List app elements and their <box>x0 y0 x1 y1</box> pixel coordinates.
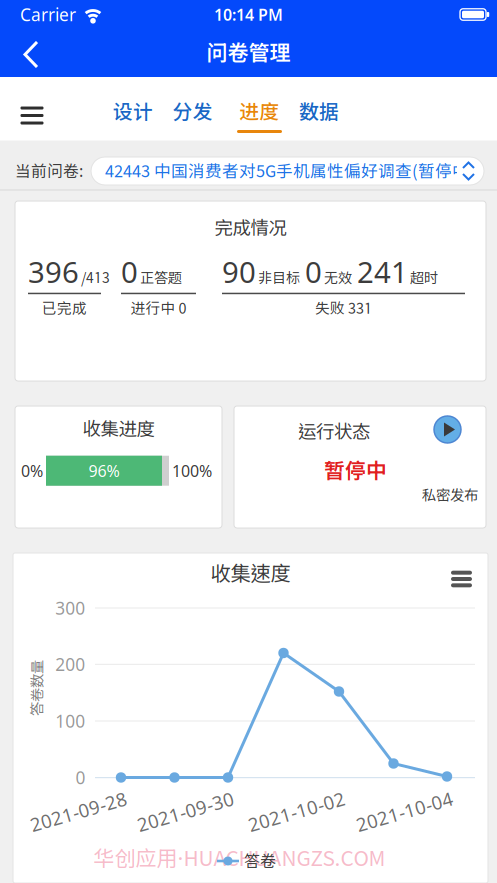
staticText: 42443 中国消费者对5G手机属性偏好调查(暂停中 <box>105 161 469 181</box>
staticText: 241 <box>357 252 408 291</box>
staticText: 进行中 0 <box>130 300 186 317</box>
staticText: 2021-09-30 <box>135 799 235 824</box>
staticText: 90 <box>222 252 256 291</box>
staticText: 2021-10-02 <box>246 799 346 824</box>
staticText: Carrier <box>20 3 76 26</box>
button[interactable]: 设计 <box>103 79 163 144</box>
button[interactable]: 42443 中国消费者对5G手机属性偏好调查(暂停中 <box>91 157 484 185</box>
staticText: 396 <box>28 252 79 291</box>
staticText: 运行状态 <box>298 421 370 442</box>
button[interactable]: 进度 <box>222 79 297 144</box>
staticText: 超时 <box>410 269 438 286</box>
staticText: 300 <box>55 596 85 619</box>
staticText: 完成情况 <box>214 217 286 239</box>
staticText: 96% <box>88 460 119 481</box>
staticText: 问卷管理 <box>206 40 290 65</box>
staticText: 2021-09-28 <box>28 799 128 824</box>
staticText: 正答题 <box>140 269 182 286</box>
staticText: 失败 331 <box>315 300 372 317</box>
staticText: 答卷数量 <box>9 680 65 696</box>
staticText: 100% <box>172 460 212 481</box>
staticText: 数据 <box>299 100 339 123</box>
staticText: 已完成 <box>42 300 87 317</box>
staticText: 收集进度 <box>82 418 154 440</box>
staticText: 设计 <box>113 100 153 123</box>
staticText: 分发 <box>172 100 212 123</box>
staticText: 进度 <box>239 100 279 123</box>
staticText: 0 <box>121 252 138 291</box>
staticText: 非目标 <box>258 269 300 286</box>
staticText: 10:14 PM <box>214 4 283 25</box>
button[interactable] <box>446 564 476 594</box>
staticText: /413 <box>81 269 110 286</box>
staticText: 0% <box>21 460 43 481</box>
staticText: 答卷 <box>244 852 276 870</box>
staticText: 0 <box>305 252 322 291</box>
staticText: 华创应用·HUACHUANGZS.COM <box>93 846 385 870</box>
button[interactable]: 数据 <box>297 79 341 144</box>
button[interactable] <box>0 77 56 142</box>
staticText: 收集速度 <box>210 561 290 585</box>
staticText: 暂停中 <box>324 458 387 482</box>
staticText: 200 <box>55 653 85 676</box>
button[interactable] <box>434 416 461 443</box>
staticText: 0 <box>75 766 85 789</box>
staticText: 无效 <box>324 269 352 286</box>
staticText: 私密发布 <box>422 486 478 503</box>
staticText: 100 <box>55 709 85 732</box>
button[interactable]: 分发 <box>163 79 222 144</box>
staticText: 当前问卷: <box>15 162 83 180</box>
staticText: 2021-10-04 <box>354 799 454 824</box>
button[interactable] <box>0 32 60 77</box>
